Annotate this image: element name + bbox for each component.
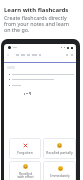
staticText: Immediately [50, 173, 70, 177]
button[interactable]: Recalled partially [43, 138, 76, 159]
staticText: Recalled partially [46, 150, 73, 154]
button[interactable]: Profile [8, 46, 11, 49]
button[interactable]: Forgotten [9, 138, 41, 159]
staticText: Learn with flashcards [4, 6, 69, 14]
button[interactable]: Immediately [43, 161, 76, 180]
staticText: Recalled with effort [17, 171, 34, 179]
staticText: Create flashcards directly from your not… [4, 14, 70, 33]
button[interactable]: Recalled with effort [9, 161, 41, 180]
staticText: Forgotten [17, 150, 33, 154]
